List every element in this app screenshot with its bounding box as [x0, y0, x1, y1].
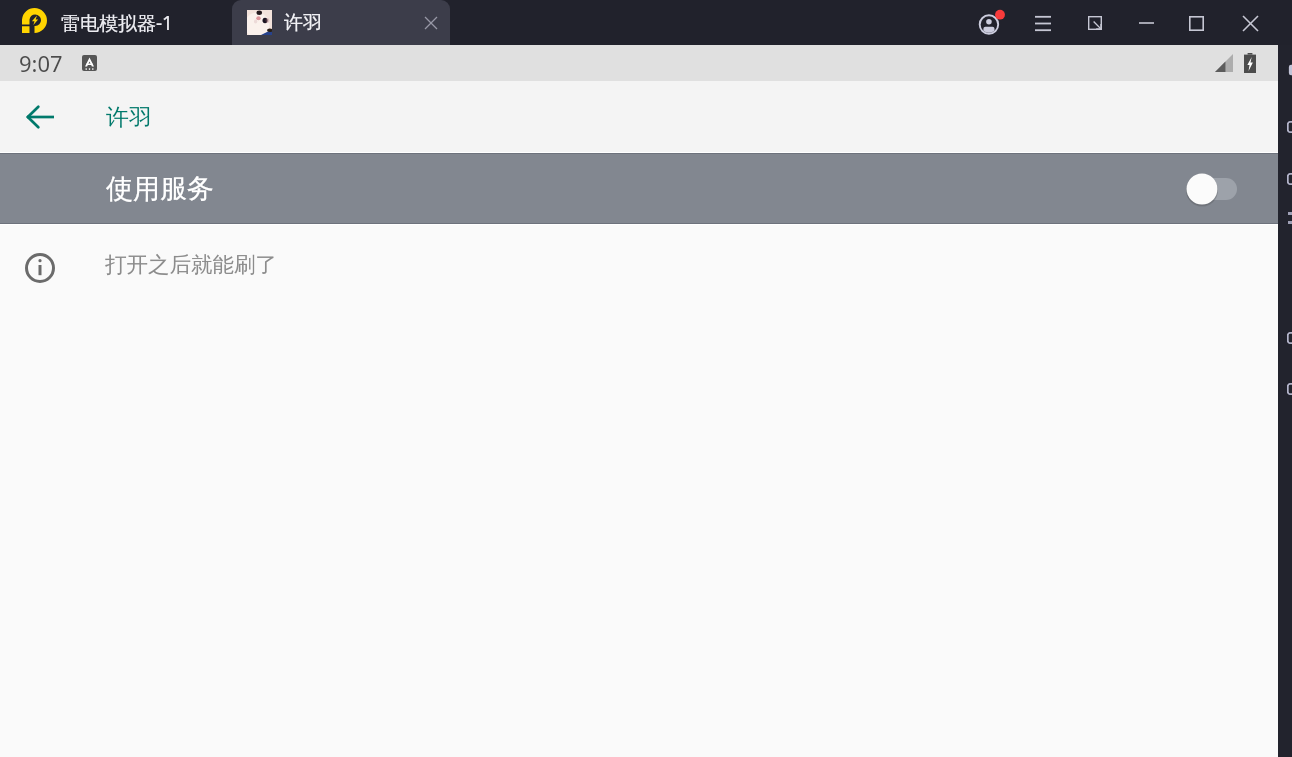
button[interactable]: Close tab: [417, 9, 445, 37]
staticText: 许羽: [284, 11, 322, 35]
button[interactable]: Maximize: [1181, 8, 1211, 38]
button[interactable]: Rotate screen: [1287, 173, 1292, 185]
button[interactable]: Menu: [1028, 8, 1058, 38]
button[interactable]: 打开之后就能刷了: [0, 225, 1278, 308]
button[interactable]: 使用服务: [0, 152, 1278, 225]
button[interactable]: LDPlayer: [0, 0, 232, 45]
staticText: 使用服务: [106, 172, 214, 206]
button[interactable]: 许羽: [232, 0, 450, 45]
button[interactable]: Back: [12, 89, 68, 145]
button[interactable]: Screenshot: [1287, 332, 1292, 344]
button[interactable]: Close: [1235, 8, 1265, 38]
staticText: 许羽: [106, 103, 152, 132]
staticText: 雷电模拟器-1: [61, 10, 173, 36]
button[interactable]: Use service toggle: [1176, 152, 1268, 225]
button[interactable]: LDPlayer: [22, 8, 47, 33]
button[interactable]: Volume down: [1287, 121, 1292, 133]
button[interactable]: Account: [975, 6, 1009, 40]
button[interactable]: Restore size: [1080, 8, 1110, 38]
button[interactable]: Volume up: [1287, 64, 1292, 76]
staticText: 9:07: [19, 48, 63, 78]
button[interactable]: Minimize: [1131, 8, 1161, 38]
button[interactable]: Shake: [1287, 383, 1292, 395]
staticText: 打开之后就能刷了: [105, 251, 277, 278]
